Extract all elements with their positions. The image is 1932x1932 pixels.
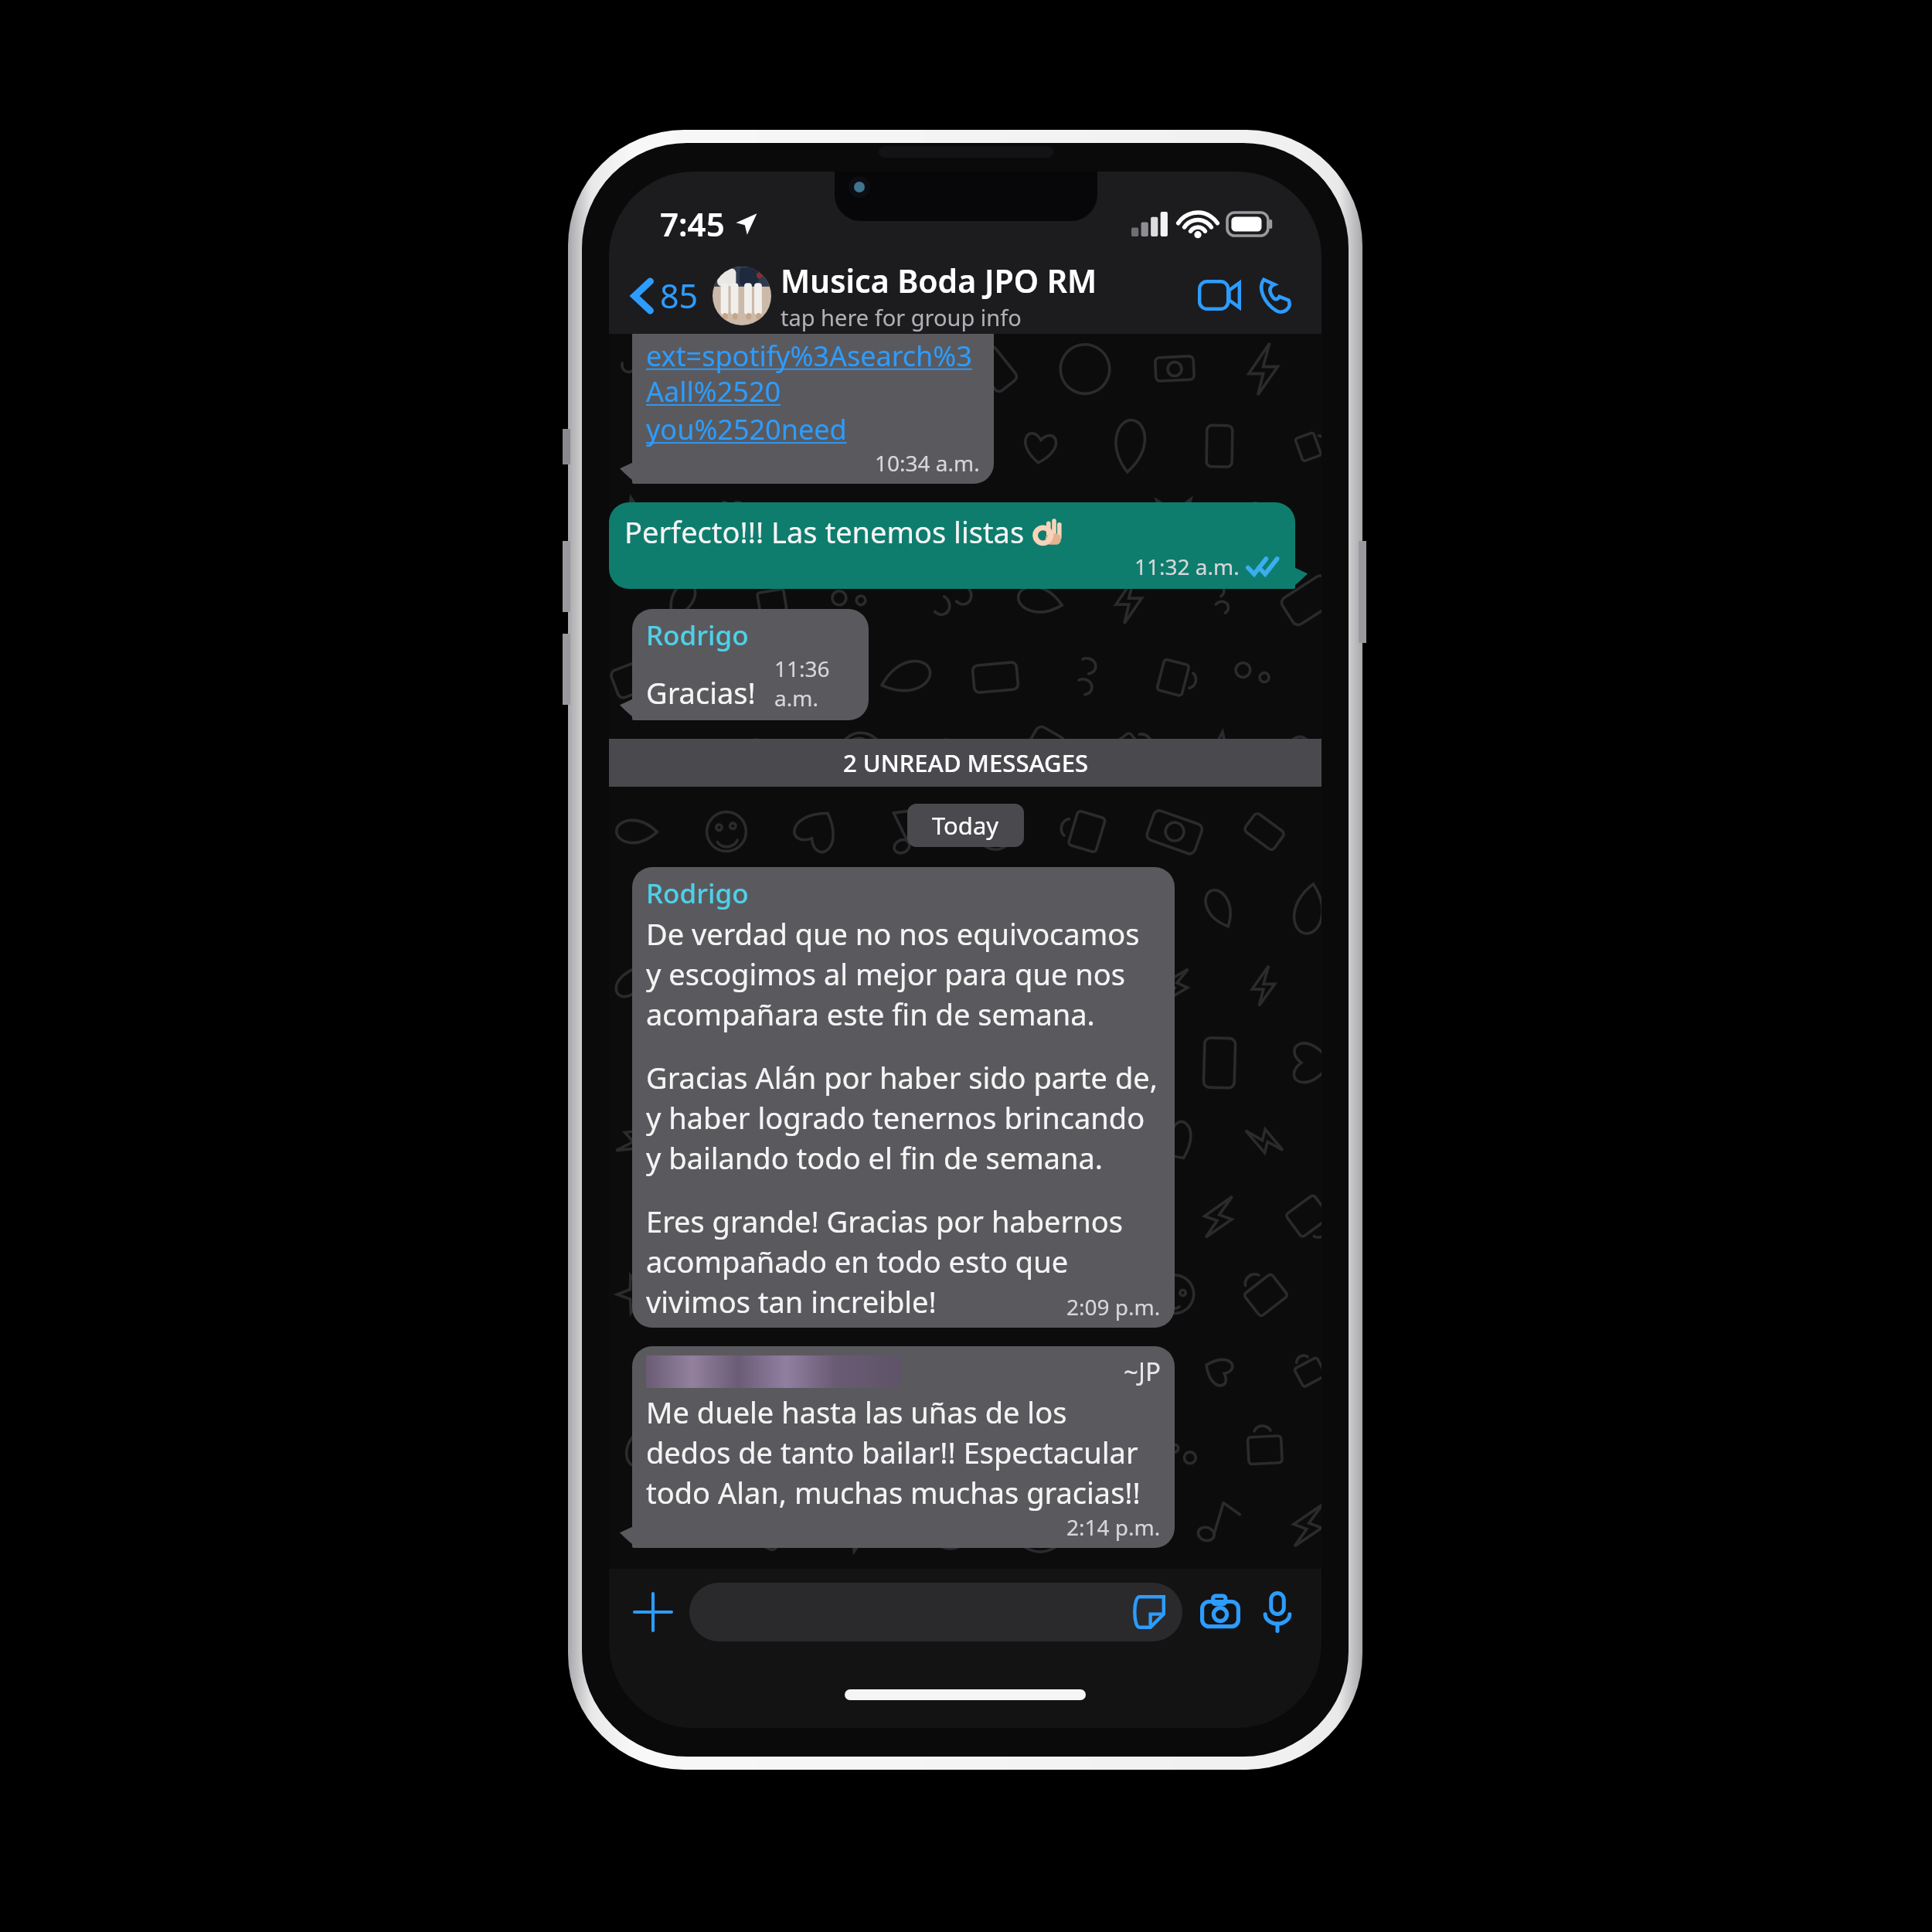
- staticText: todo Alan, muchas muchas gracias!!: [646, 1472, 1141, 1512]
- staticText: 7:45: [660, 202, 725, 246]
- staticText: 11:36 a.m.: [774, 654, 855, 713]
- staticText: Eres grande! Gracias por habernos: [646, 1201, 1123, 1241]
- staticText: y bailando todo el fin de semana.: [646, 1138, 1104, 1178]
- staticText: Perfecto!!! Las tenemos listas: [624, 512, 1032, 552]
- button[interactable]: Camera: [1193, 1585, 1247, 1639]
- staticText: 11:32 a.m.: [1134, 552, 1240, 581]
- staticText: Rodrigo: [646, 617, 749, 654]
- staticText: 10:34 a.m.: [875, 448, 980, 478]
- staticText: Musica Boda JPO RM: [781, 259, 1097, 302]
- staticText: 2:09 p.m.: [1066, 1292, 1161, 1321]
- button[interactable]: Attach: [626, 1585, 680, 1639]
- button[interactable]: Back, 85 chats: [628, 267, 703, 325]
- staticText: 2 UNREAD MESSAGES: [843, 747, 1088, 779]
- staticText: Gracias!: [646, 672, 756, 713]
- staticText: you%2520need: [646, 410, 847, 448]
- staticText: De verdad que no nos equivocamos: [646, 913, 1140, 954]
- button[interactable]: Video call: [1192, 267, 1247, 323]
- staticText: ext=spotify%3Asearch%3Aall%2520: [646, 337, 980, 410]
- staticText: vivimos tan increible!: [646, 1281, 937, 1321]
- button[interactable]: Stickers: [1128, 1592, 1168, 1632]
- staticText: ~JP: [1124, 1354, 1161, 1389]
- staticText: Gracias Alán por haber sido parte de,: [646, 1057, 1158, 1097]
- button[interactable]: Stickers: [689, 1583, 1182, 1641]
- staticText: Today: [932, 809, 999, 842]
- staticText: Rodrigo: [646, 875, 749, 912]
- button[interactable]: Voice message: [1250, 1585, 1304, 1639]
- staticText: 2:14 p.m.: [1066, 1512, 1161, 1542]
- button[interactable]: Musica Boda JPO RM: [713, 259, 1192, 332]
- staticText: acompañara este fin de semana.: [646, 994, 1095, 1034]
- staticText: acompañado en todo esto que: [646, 1241, 1069, 1281]
- button[interactable]: Rodrigo: [632, 867, 1175, 1328]
- staticText: dedos de tanto bailar!! Espectacular: [646, 1432, 1138, 1472]
- button[interactable]: ~JP: [632, 1346, 1175, 1548]
- staticText: y haber logrado tenernos brincando: [646, 1097, 1145, 1138]
- button[interactable]: ext=spotify%3Asearch%3Aall%2520: [632, 334, 994, 484]
- button[interactable]: Voice call: [1247, 267, 1303, 323]
- button[interactable]: Rodrigo: [632, 609, 869, 720]
- staticText: Me duele hasta las uñas de los: [646, 1392, 1067, 1432]
- button[interactable]: Perfecto!!! Las tenemos listas: [609, 502, 1295, 589]
- staticText: tap here for group info: [781, 302, 1022, 332]
- staticText: 85: [660, 273, 699, 318]
- staticText: y escogimos al mejor para que nos: [646, 954, 1125, 994]
- button[interactable]: 2 UNREAD MESSAGES: [609, 739, 1321, 787]
